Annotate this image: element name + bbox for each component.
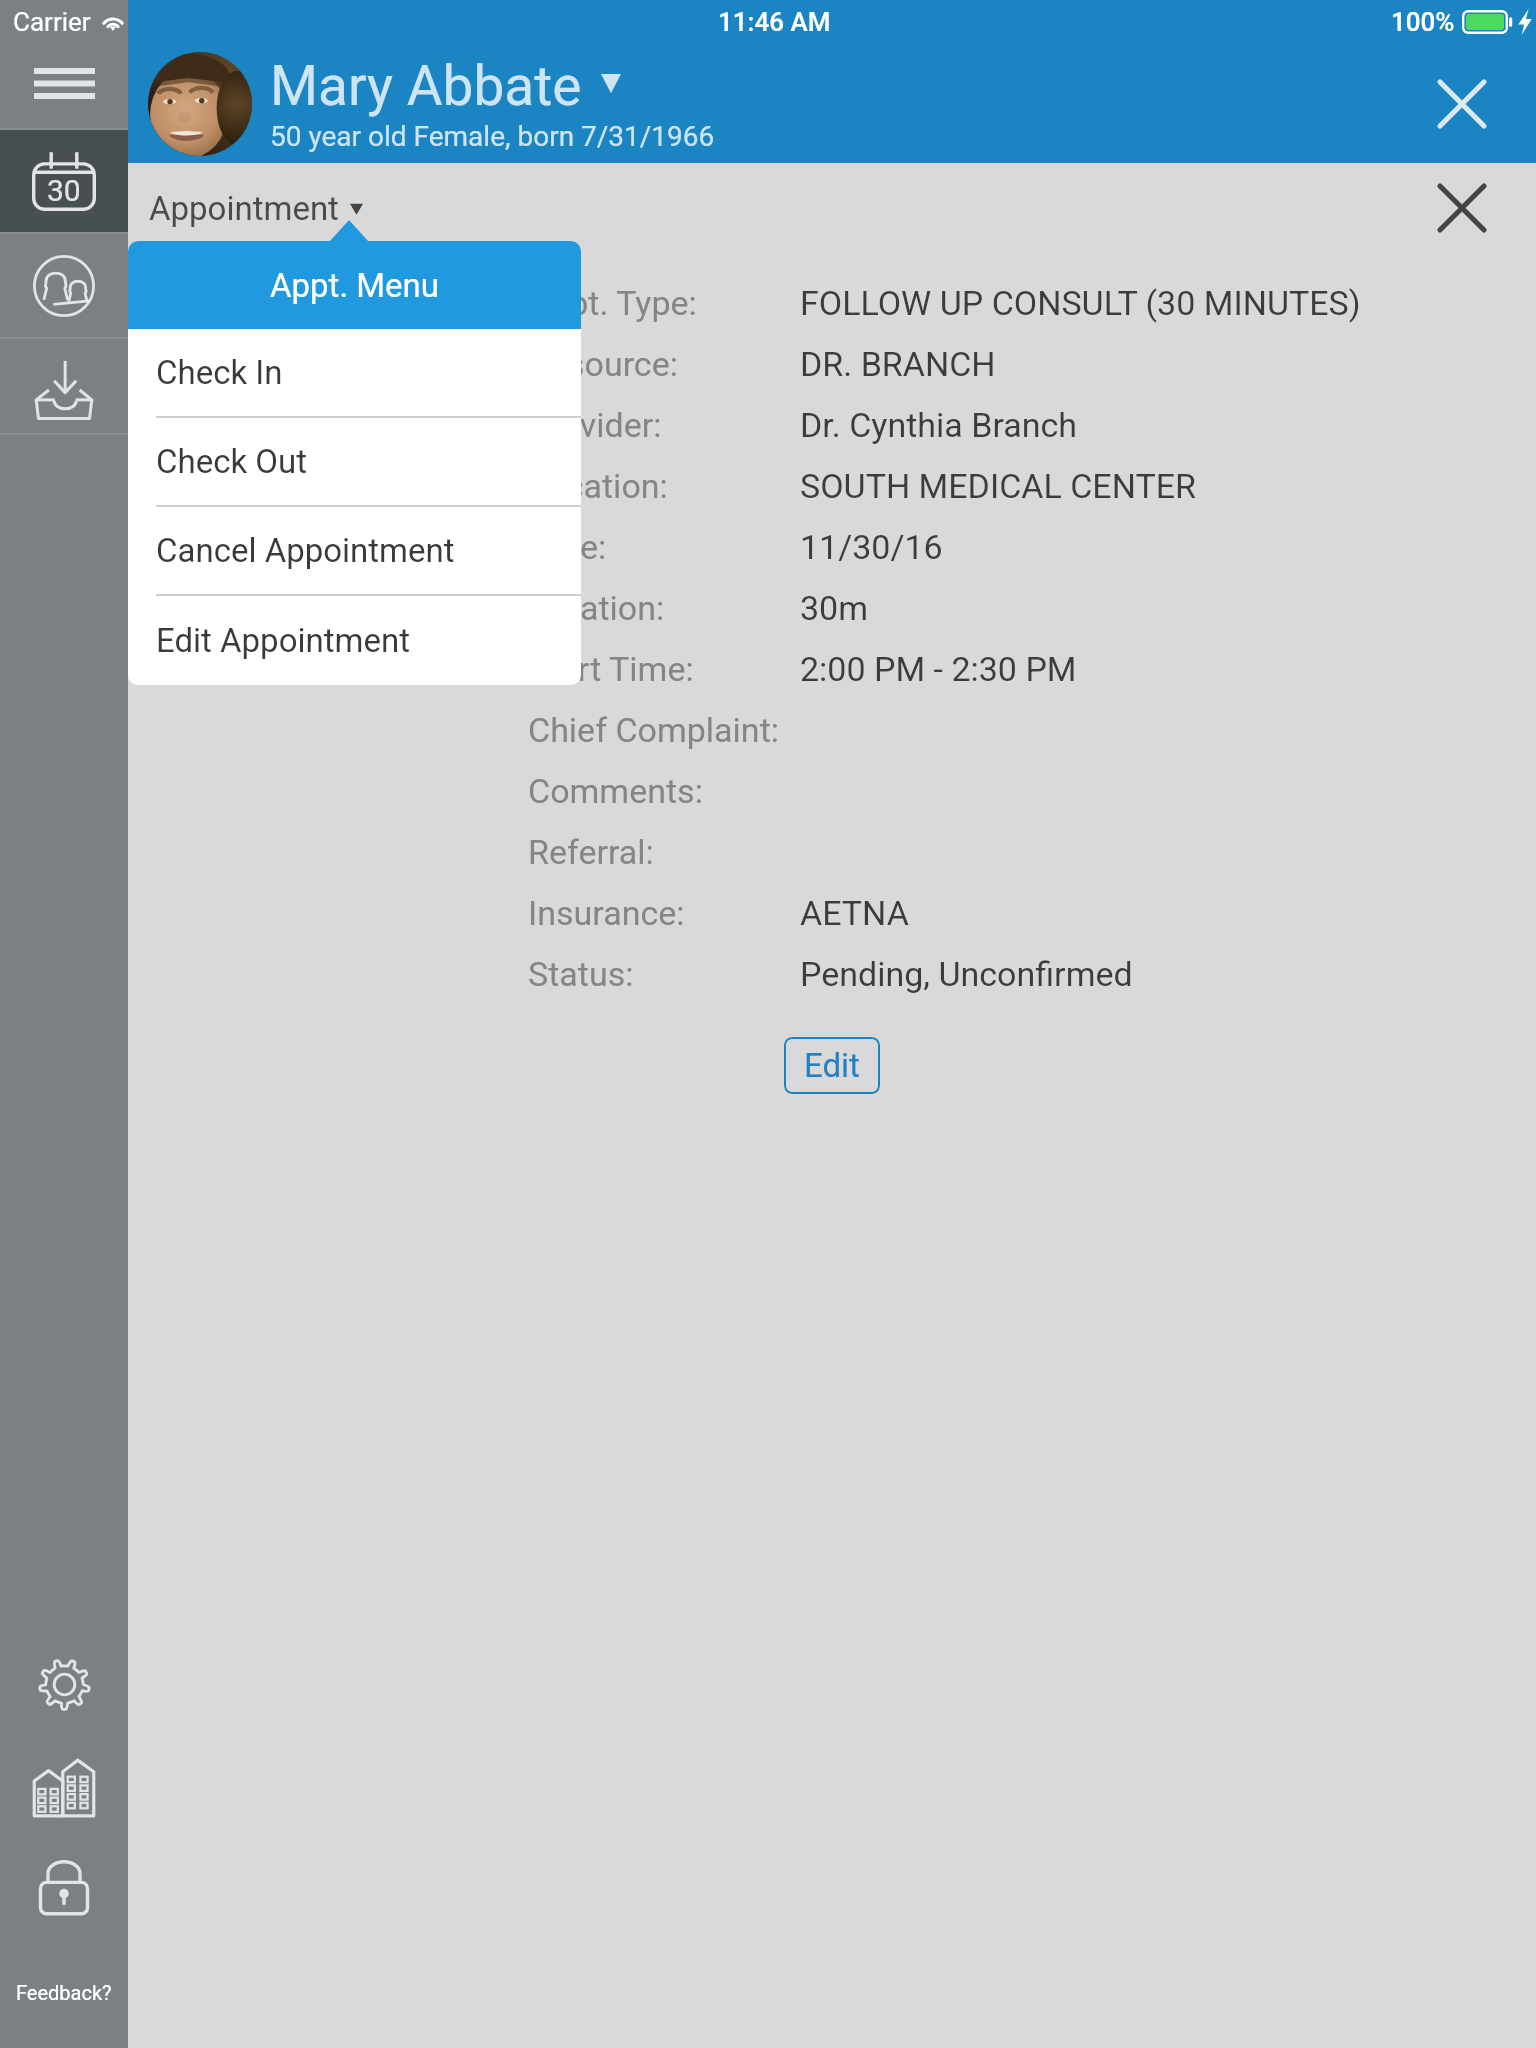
staticText: 30m (800, 588, 869, 628)
button[interactable]: Appt. Menu (128, 241, 581, 329)
staticText: Referral: (528, 832, 654, 872)
staticText: Status: (528, 954, 634, 994)
button[interactable]: Appointment (145, 179, 367, 238)
staticText: FOLLOW UP CONSULT (30 MINUTES) (800, 283, 1361, 323)
button[interactable]: Menu (0, 44, 128, 128)
staticText: 100% (1391, 7, 1455, 37)
staticText: Start Time: (528, 649, 694, 689)
button[interactable]: Check Out (128, 418, 581, 507)
staticText: Chief Complaint: (528, 710, 779, 750)
staticText: Resource: (528, 344, 678, 384)
button[interactable]: Calendar (0, 130, 128, 232)
staticText: Pending, Unconfirmed (800, 954, 1133, 994)
staticText: Appt. Menu (270, 266, 439, 305)
staticText: Comments: (528, 771, 703, 811)
staticText: Duration: (528, 588, 665, 628)
button[interactable]: Edit (784, 1037, 880, 1094)
staticText: Location: (528, 466, 668, 506)
button[interactable]: Settings (0, 1632, 128, 1736)
button[interactable]: Cancel Appointment (128, 507, 581, 596)
staticText: Provider: (528, 405, 662, 445)
button[interactable]: Check In (128, 329, 581, 418)
button[interactable]: Facilities (0, 1736, 128, 1840)
button[interactable]: Inbox (0, 339, 128, 433)
staticText: Date: (528, 527, 607, 567)
staticText: 50 year old Female, born 7/31/1966 (270, 120, 715, 153)
staticText: Edit Appointment (156, 621, 410, 660)
button[interactable]: Edit Appointment (128, 596, 581, 685)
staticText: Check Out (156, 442, 308, 481)
button[interactable]: Close (1414, 163, 1510, 253)
staticText: Appt. Type: (528, 283, 697, 323)
button[interactable]: Patients (0, 234, 128, 337)
staticText: Insurance: (528, 893, 685, 933)
staticText: 2:00 PM - 2:30 PM (800, 649, 1077, 689)
staticText: Feedback? (16, 1981, 112, 2004)
button[interactable]: Lock (0, 1840, 128, 1936)
staticText: Dr. Cynthia Branch (800, 405, 1078, 445)
staticText: Mary Abbate (270, 54, 582, 118)
staticText: Edit (804, 1046, 860, 1085)
staticText: 11:46 AM (718, 7, 831, 37)
staticText: SOUTH MEDICAL CENTER (800, 466, 1197, 506)
button[interactable]: Close patient (1414, 56, 1510, 152)
staticText: 30 (47, 173, 81, 208)
button[interactable]: Feedback? (0, 1936, 128, 2048)
staticText: 11/30/16 (800, 527, 943, 567)
staticText: AETNA (800, 893, 909, 933)
staticText: Carrier (13, 7, 91, 37)
staticText: DR. BRANCH (800, 344, 996, 384)
staticText: Cancel Appointment (156, 531, 455, 570)
staticText: Check In (156, 353, 283, 392)
staticText: Appointment (149, 189, 339, 228)
